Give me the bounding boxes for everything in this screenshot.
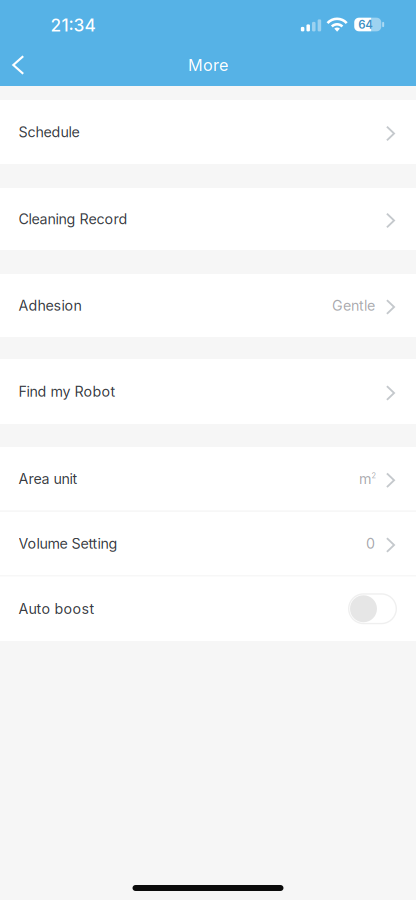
- staticText: Volume Setting: [18, 535, 117, 552]
- staticText: 2: [372, 471, 377, 480]
- staticText: 21:34: [50, 15, 95, 36]
- staticText: Auto boost: [18, 600, 94, 617]
- staticText: 64: [358, 18, 373, 31]
- button[interactable]: Area unit: [0, 447, 416, 510]
- staticText: Cleaning Record: [18, 210, 127, 228]
- button[interactable]: Cleaning Record: [0, 188, 416, 250]
- staticText: 0: [366, 535, 375, 552]
- staticText: Schedule: [18, 123, 79, 141]
- button[interactable]: Auto boost: [0, 576, 416, 641]
- button[interactable]: Find my Robot: [0, 359, 416, 424]
- staticText: Adhesion: [18, 297, 81, 314]
- staticText: Gentle: [332, 297, 375, 314]
- button[interactable]: Schedule: [0, 100, 416, 164]
- staticText: More: [188, 55, 228, 75]
- button[interactable]: Back: [0, 44, 38, 86]
- button[interactable]: Volume Setting: [0, 512, 416, 575]
- staticText: Find my Robot: [18, 383, 115, 400]
- button[interactable]: Adhesion: [0, 274, 416, 337]
- staticText: m: [359, 470, 371, 487]
- staticText: Area unit: [18, 470, 77, 487]
